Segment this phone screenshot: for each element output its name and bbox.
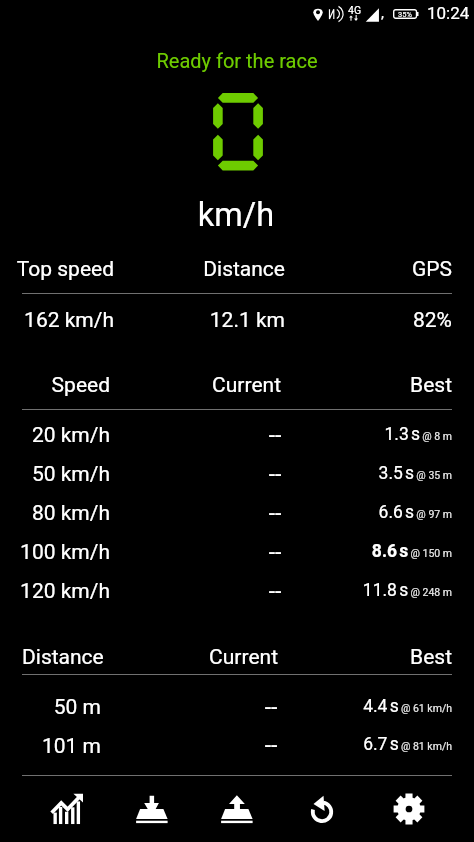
staticText: -- xyxy=(75,461,474,488)
staticText: 1.3 s @ 8 m xyxy=(52,424,452,445)
staticText: 50 km/h xyxy=(0,462,110,487)
staticText: Ready for the race xyxy=(37,49,437,72)
button[interactable] xyxy=(0,687,474,726)
button[interactable] xyxy=(0,533,474,572)
staticText: 82% xyxy=(52,308,452,333)
button[interactable] xyxy=(0,494,474,533)
staticText: 50 m xyxy=(0,695,101,720)
button[interactable]: Import xyxy=(109,776,194,842)
staticText: -- xyxy=(75,422,474,449)
staticText: 162 km/h xyxy=(0,308,114,333)
button[interactable] xyxy=(0,572,474,611)
staticText: km/h xyxy=(36,196,436,234)
button[interactable] xyxy=(0,726,474,765)
staticText: 100 km/h xyxy=(0,540,110,565)
staticText: GPS xyxy=(52,257,452,282)
staticText: -- xyxy=(71,732,471,759)
staticText: 4G xyxy=(348,4,362,16)
staticText: 4.4 s @ 61 km/h xyxy=(52,696,452,717)
staticText: -- xyxy=(75,578,474,605)
staticText: 12.1 km xyxy=(0,308,285,333)
staticText: 35% xyxy=(398,10,412,19)
staticText: Current xyxy=(0,645,278,670)
staticText: 80 km/h xyxy=(0,501,110,526)
staticText: Best xyxy=(52,645,452,670)
button[interactable]: Statistics xyxy=(24,776,109,842)
button[interactable] xyxy=(0,455,474,494)
staticText: Distance xyxy=(0,257,285,282)
staticText: Speed xyxy=(0,373,110,398)
button[interactable]: Settings xyxy=(366,776,452,842)
staticText: 6.6 s @ 97 m xyxy=(52,502,452,523)
button[interactable]: Export xyxy=(194,776,280,842)
staticText: 11.8 s @ 248 m xyxy=(52,580,452,601)
staticText: 20 km/h xyxy=(0,423,110,448)
staticText: -- xyxy=(75,539,474,566)
staticText: -- xyxy=(71,694,471,721)
staticText: Top speed xyxy=(0,257,114,282)
staticText: 3.5 s @ 35 m xyxy=(52,463,452,484)
staticText: 6.7 s @ 81 km/h xyxy=(52,734,452,755)
staticText: 101 m xyxy=(0,734,101,759)
staticText: 8.6 s @ 150 m xyxy=(52,541,452,562)
staticText: Current xyxy=(0,373,281,398)
button[interactable] xyxy=(0,416,474,455)
staticText: 120 km/h xyxy=(0,579,110,604)
staticText: Best xyxy=(52,373,452,398)
staticText: Distance xyxy=(22,645,104,670)
staticText: -- xyxy=(75,500,474,527)
staticText: 10:24 xyxy=(427,3,470,23)
staticText: , xyxy=(381,4,384,22)
button[interactable]: Reset xyxy=(280,776,366,842)
